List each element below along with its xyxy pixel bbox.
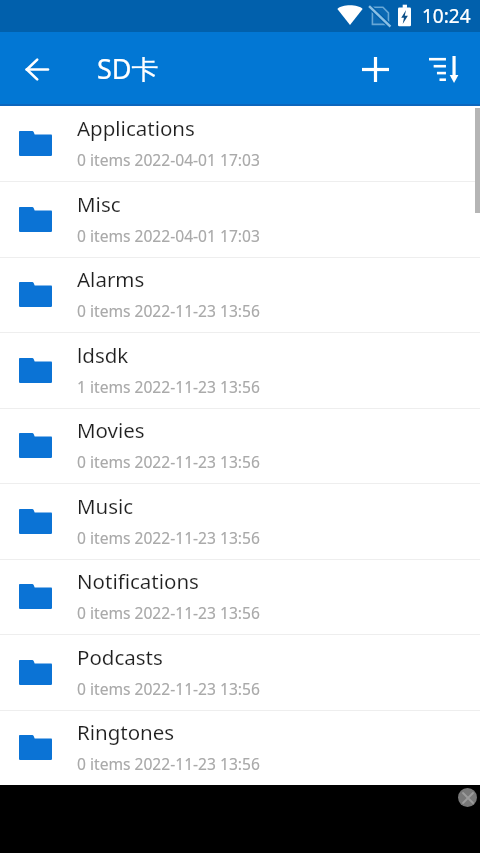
staticText: 0 items 2022-11-23 13:56 — [77, 527, 260, 548]
button[interactable]: Add — [347, 41, 403, 97]
staticText: Notifications — [77, 567, 199, 595]
button[interactable]: Applications — [0, 106, 480, 182]
staticText: 0 items 2022-11-23 13:56 — [77, 678, 260, 699]
staticText: Music — [77, 492, 134, 520]
button[interactable]: Back — [9, 41, 65, 97]
button[interactable]: Alarms — [0, 257, 480, 333]
button[interactable]: Podcasts — [0, 635, 480, 711]
staticText: Ringtones — [77, 718, 175, 746]
button[interactable]: ldsdk — [0, 333, 480, 409]
staticText: 1 items 2022-11-23 13:56 — [77, 376, 260, 397]
button[interactable]: Close — [458, 788, 477, 807]
staticText: 10:24 — [422, 3, 471, 29]
button[interactable]: Ringtones — [0, 710, 480, 786]
staticText: SD卡 — [97, 50, 159, 87]
staticText: ldsdk — [77, 341, 129, 369]
staticText: 0 items 2022-11-23 13:56 — [77, 300, 260, 321]
staticText: Movies — [77, 416, 145, 444]
staticText: Podcasts — [77, 643, 163, 671]
staticText: Alarms — [77, 265, 145, 293]
staticText: Misc — [77, 190, 121, 218]
staticText: 0 items 2022-11-23 13:56 — [77, 451, 260, 472]
staticText: Applications — [77, 114, 195, 142]
staticText: 0 items 2022-11-23 13:56 — [77, 753, 260, 774]
staticText: 0 items 2022-04-01 17:03 — [77, 149, 260, 170]
button[interactable]: Misc — [0, 182, 480, 258]
staticText: 0 items 2022-11-23 13:56 — [77, 602, 260, 623]
button[interactable]: Sort — [416, 41, 472, 97]
staticText: 0 items 2022-04-01 17:03 — [77, 225, 260, 246]
button[interactable]: Music — [0, 484, 480, 560]
button[interactable]: Movies — [0, 408, 480, 484]
button[interactable]: Notifications — [0, 559, 480, 635]
